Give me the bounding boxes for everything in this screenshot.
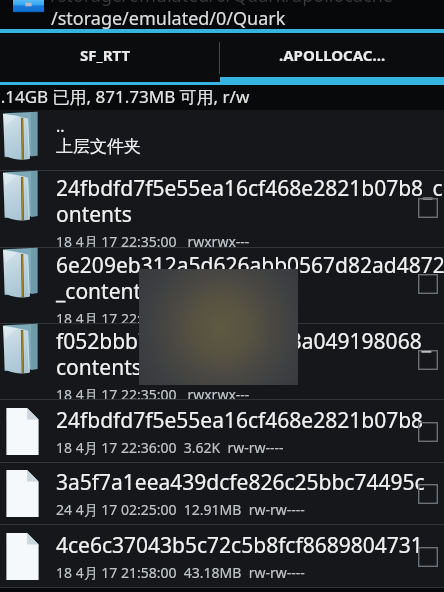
staticText: 3a5f7a1eea439dcfe826c25bbc74495c: [56, 468, 425, 497]
button[interactable]: Select item: [414, 270, 442, 298]
button[interactable]: Select item: [414, 194, 442, 222]
staticText: 6e209eb312a5d626abb0567d82ad4872_content…: [56, 251, 444, 306]
button[interactable]: Select item: [414, 346, 442, 374]
button[interactable]: Select item: [414, 480, 442, 508]
staticText: 24 4月 17 02:25:00 12.91MB rw-rw----: [56, 500, 305, 519]
staticText: .APOLLOCAC...: [279, 45, 386, 65]
button[interactable]: f052bbb7e0bd5a6df04c3a049198068_contents: [0, 324, 444, 399]
staticText: f052bbb7e0bd5a6df04c3a049198068_contents: [56, 327, 440, 382]
staticText: /storage/emulated/0/Quark: [51, 6, 286, 31]
staticText: SF_RTT: [80, 45, 131, 65]
staticText: 3.14GB 已用, 871.73MB 可用, r/w: [0, 85, 250, 108]
button[interactable]: SF_RTT: [0, 33, 220, 77]
staticText: 24fbdfd7f5e55ea16cf468e2821b07b8_content…: [56, 174, 444, 229]
button[interactable]: ..: [0, 110, 444, 170]
staticText: 18 4月 17 21:58:00 43.18MB rw-rw----: [56, 563, 305, 582]
button[interactable]: 24fbdfd7f5e55ea16cf468e2821b07b8: [0, 400, 444, 462]
button[interactable]: 24fbdfd7f5e55ea16cf468e2821b07b8_content…: [0, 171, 444, 247]
button[interactable]: 3a5f7a1eea439dcfe826c25bbc74495c: [0, 463, 444, 524]
button[interactable]: Select item: [414, 543, 442, 571]
staticText: 18 4月 17 22:35:00 rwxrwx---: [56, 309, 250, 326]
button[interactable]: 6e209eb312a5d626abb0567d82ad4872_content…: [0, 248, 444, 323]
staticText: 18 4月 17 22:35:00 rwxrwx---: [56, 232, 250, 250]
staticText: 24fbdfd7f5e55ea16cf468e2821b07b8: [56, 406, 424, 435]
button[interactable]: 4ce6c37043b5c72c5b8fcf8689804731: [0, 525, 444, 587]
button[interactable]: Select item: [414, 418, 442, 446]
button[interactable]: /storage/emulated/0/Quark/apollocache: [0, 0, 444, 29]
staticText: ..: [56, 115, 65, 137]
staticText: 上层文件夹: [56, 136, 141, 157]
staticText: 18 4月 17 22:35:00 rwxrwx---: [56, 385, 250, 402]
staticText: 18 4月 17 22:36:00 3.62K rw-rw----: [56, 438, 284, 457]
button[interactable]: .APOLLOCAC...: [220, 33, 444, 77]
staticText: /storage/emulated/0/Quark/apollocache: [51, 0, 393, 8]
staticText: 4ce6c37043b5c72c5b8fcf8689804731: [56, 531, 423, 560]
